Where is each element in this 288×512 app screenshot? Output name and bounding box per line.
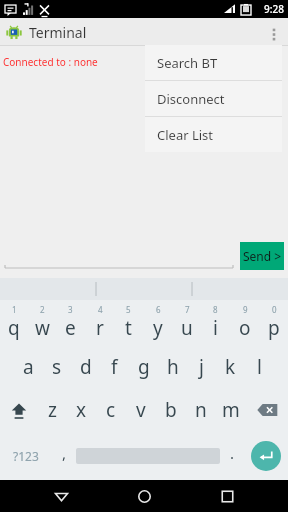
button[interactable]: v (126, 388, 156, 431)
button[interactable]: l (245, 345, 274, 388)
staticText: 1 (12, 304, 17, 315)
button[interactable]: More options (260, 18, 288, 46)
button[interactable]: f (100, 345, 129, 388)
staticText: k (225, 354, 236, 380)
button[interactable]: g (129, 345, 158, 388)
button[interactable]: Enter (251, 441, 281, 471)
staticText: x (76, 397, 87, 423)
staticText: Send > (243, 248, 282, 264)
button[interactable]: 1 (0, 300, 28, 345)
staticText: Clear List (157, 126, 214, 144)
button[interactable]: 3 (56, 300, 85, 345)
button[interactable]: z (38, 388, 67, 431)
staticText: h (167, 354, 179, 380)
button[interactable]: d (71, 345, 100, 388)
staticText: o (239, 315, 251, 341)
staticText: g (138, 354, 150, 380)
staticText: 6 (156, 304, 161, 315)
button[interactable]: h (158, 345, 187, 388)
button[interactable]: Disconnect (145, 81, 282, 116)
staticText: v (136, 397, 146, 423)
staticText: a (23, 354, 34, 380)
button[interactable]: m (216, 388, 246, 431)
button[interactable]: j (187, 345, 216, 388)
staticText: r (96, 315, 104, 341)
staticText: 7 (185, 304, 190, 315)
button[interactable]: Back (39, 480, 83, 512)
button[interactable]: 8 (201, 300, 230, 345)
staticText: u (181, 315, 193, 341)
staticText: Connected to : none (3, 55, 98, 69)
button[interactable]: 5 (114, 300, 143, 345)
button[interactable]: 6 (143, 300, 172, 345)
staticText: y (153, 315, 163, 341)
staticText: ?123 (13, 448, 39, 464)
button[interactable] (4, 240, 234, 270)
staticText: 0 (272, 304, 277, 315)
button[interactable]: n (186, 388, 216, 431)
staticText: s (52, 354, 62, 380)
staticText: l (257, 354, 262, 380)
staticText: , (62, 443, 67, 463)
button[interactable]: Shift (0, 388, 38, 431)
staticText: Terminal (29, 23, 87, 42)
button[interactable]: 7 (172, 300, 201, 345)
staticText: c (106, 397, 116, 423)
staticText: 9 (243, 304, 248, 315)
button[interactable]: Recent apps (205, 480, 249, 512)
staticText: 8 (213, 304, 218, 315)
staticText: 3 (68, 304, 73, 315)
staticText: w (35, 315, 50, 341)
button[interactable]: k (216, 345, 245, 388)
button[interactable]: Clear List (145, 117, 282, 152)
staticText: d (80, 354, 92, 380)
button[interactable]: 4 (85, 300, 114, 345)
button[interactable]: . (220, 431, 244, 480)
button[interactable]: Home (122, 480, 166, 512)
staticText: n (195, 397, 207, 423)
button[interactable]: Backspace (246, 388, 288, 431)
staticText: 5 (126, 304, 131, 315)
staticText: q (8, 315, 20, 341)
button[interactable]: a (14, 345, 42, 388)
staticText: i (213, 315, 218, 341)
staticText: z (48, 397, 57, 423)
staticText: f (111, 354, 118, 380)
staticText: e (65, 315, 76, 341)
button[interactable]: Search BT (145, 45, 282, 80)
button[interactable]: s (42, 345, 71, 388)
staticText: 9:28 (264, 2, 284, 16)
button[interactable]: b (156, 388, 186, 431)
button[interactable]: 9 (230, 300, 259, 345)
staticText: 4 (98, 304, 103, 315)
button[interactable]: c (96, 388, 126, 431)
staticText: Disconnect (157, 90, 225, 108)
staticText: b (165, 397, 177, 423)
button[interactable]: , (52, 431, 76, 480)
staticText: m (222, 397, 240, 423)
staticText: t (125, 315, 132, 341)
button[interactable]: 2 (28, 300, 56, 345)
staticText: p (268, 315, 280, 341)
button[interactable]: 0 (259, 300, 288, 345)
button[interactable]: x (67, 388, 96, 431)
staticText: 2 (40, 304, 45, 315)
staticText: Search BT (157, 54, 218, 72)
staticText: . (230, 443, 235, 463)
staticText: j (199, 354, 204, 380)
button[interactable]: ?123 (0, 431, 52, 480)
button[interactable]: Send > (240, 242, 284, 270)
